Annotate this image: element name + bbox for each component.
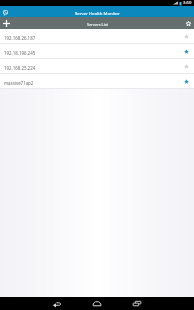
button[interactable]: Toggle favorite	[179, 59, 194, 74]
button[interactable]: Toggle favorite	[179, 74, 194, 89]
staticText: 3:50	[183, 0, 192, 6]
button[interactable]: 192.18.196.245	[0, 44, 194, 59]
staticText: 192.168.25.224	[4, 65, 36, 71]
button[interactable]: 192.168.25.224	[0, 59, 194, 74]
button[interactable]: Add server	[0, 17, 12, 29]
staticText: Servers List	[87, 22, 108, 27]
staticText: 192.18.196.245	[4, 50, 36, 56]
staticText: 192.168.26.187	[4, 35, 36, 41]
button[interactable]: Toggle favorite	[179, 29, 194, 44]
button[interactable]: 192.168.26.187	[0, 29, 194, 44]
button[interactable]: Home	[77, 297, 117, 310]
button[interactable]: massive71ap2	[0, 74, 194, 89]
button[interactable]: Back	[37, 297, 77, 310]
button[interactable]: Recent apps	[117, 297, 157, 310]
button[interactable]: Favorites filter	[182, 17, 194, 29]
staticText: Server Health Monitor	[75, 10, 120, 16]
button[interactable]: Toggle favorite	[179, 44, 194, 59]
staticText: massive71ap2	[4, 80, 34, 86]
button[interactable]: App logo	[3, 10, 8, 16]
